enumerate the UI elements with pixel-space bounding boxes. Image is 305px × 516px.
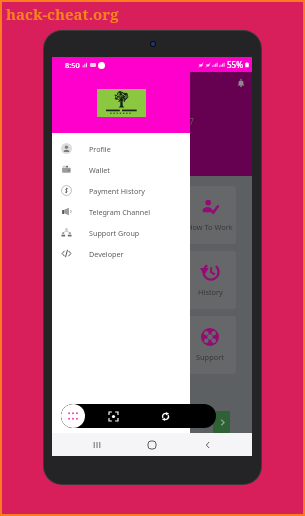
staticText: Refer [83,222,102,232]
button[interactable]: Home [141,434,163,456]
button[interactable]: How To Work [184,186,236,244]
staticText: How To Work [187,222,233,232]
staticText: hack-cheat.org [6,4,119,24]
button[interactable]: Refer [66,186,118,244]
button[interactable]: Profile [66,251,118,309]
button[interactable]: Invite [125,186,177,244]
staticText: Telegram Channel [89,207,151,217]
button[interactable]: Profile [52,138,190,159]
button[interactable]: Wallet [52,159,190,180]
staticText: 0.07 [177,116,194,128]
button[interactable]: Support [184,316,236,374]
staticText: Payment History [89,186,145,196]
button[interactable]: Payment History [52,180,190,201]
staticText: Profile [89,144,111,154]
button[interactable]: Next [213,411,230,433]
button[interactable]: Notifications [232,74,249,91]
staticText: Support [196,352,224,362]
button[interactable]: Support Group [52,222,190,243]
staticText: Developer [89,249,124,259]
button[interactable]: Back [197,434,219,456]
staticText: History [198,287,223,297]
staticText: 8:50 [65,60,80,70]
button[interactable]: Developer [52,243,190,264]
staticText: Wallet [89,165,110,175]
button[interactable]: Assistant [61,404,85,428]
button[interactable]: Screenshot [105,408,121,424]
button[interactable]: Telegram Channel [52,201,190,222]
button[interactable]: Record [157,408,173,424]
button[interactable]: Recents [86,434,108,456]
staticText: 55% [227,59,243,70]
button[interactable]: History [184,251,236,309]
staticText: Support Group [89,228,140,238]
